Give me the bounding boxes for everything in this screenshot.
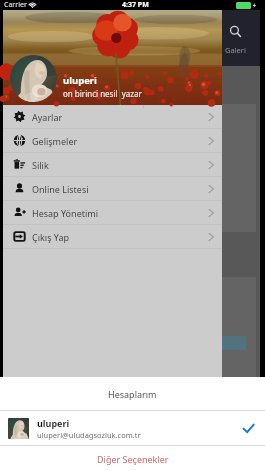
button[interactable]: Hesap Yönetimi xyxy=(3,201,222,225)
button[interactable]: Search xyxy=(210,10,260,66)
button[interactable]: Gelişmeler xyxy=(3,129,222,153)
staticText: Hesap Yönetimi xyxy=(32,207,99,219)
staticText: Silik xyxy=(32,159,49,171)
button[interactable]: Ayarlar xyxy=(3,105,222,129)
staticText: Galeri xyxy=(225,45,246,55)
button[interactable]: Çıkış Yap xyxy=(3,225,222,249)
staticText: Çıkış Yap xyxy=(32,231,70,243)
staticText: Carrier xyxy=(4,0,27,10)
button[interactable]: uluperi xyxy=(0,411,265,445)
other: Search xyxy=(229,25,242,38)
staticText: Hesaplarım xyxy=(108,388,157,400)
staticText: on birinci nesil yazar xyxy=(63,88,142,99)
staticText: uluperi xyxy=(63,74,97,87)
staticText: Online Listesi xyxy=(32,183,89,195)
staticText: Diğer Seçenekler xyxy=(97,453,169,465)
staticText: uluperi xyxy=(37,417,70,429)
staticText: Gelişmeler xyxy=(32,135,78,147)
button[interactable]: More options xyxy=(10,207,34,225)
button[interactable]: Diğer Seçenekler xyxy=(0,446,265,471)
button[interactable]: Online Listesi xyxy=(3,177,222,201)
button[interactable]: Silik xyxy=(3,153,222,177)
staticText: 4:37 PM xyxy=(122,0,149,10)
staticText: uluperi@uludagsozluk.com.tr xyxy=(37,430,141,440)
staticText: Ayarlar xyxy=(32,111,63,123)
